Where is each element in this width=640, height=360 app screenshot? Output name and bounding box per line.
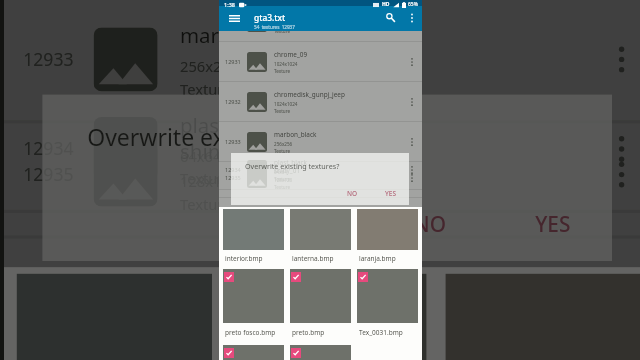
- staticText: 54 textures 12937: [254, 24, 295, 30]
- staticText: marbon_black: [274, 130, 317, 139]
- staticText: marbon_black: [180, 21, 318, 50]
- staticText: gta3.txt: [254, 12, 286, 23]
- button[interactable]: YES: [535, 210, 570, 239]
- staticText: chromedisk_gunpj_jeep: [274, 90, 345, 99]
- button[interactable]: 12932: [219, 82, 422, 121]
- button[interactable]: More options for shiny_01: [599, 152, 640, 197]
- button[interactable]: More options for shiny_01: [405, 171, 419, 185]
- button[interactable]: 12931: [219, 42, 422, 81]
- button[interactable]: 12930: [219, 31, 422, 41]
- button[interactable]: More options for marbon_black: [599, 37, 640, 82]
- staticText: 12934: [225, 166, 241, 173]
- staticText: Texture: [180, 79, 234, 98]
- staticText: plast_black: [180, 111, 289, 139]
- button[interactable]: preto fosco.bmp: [220, 269, 287, 342]
- staticText: 1:38: [224, 1, 235, 8]
- staticText: YES: [535, 210, 570, 239]
- staticText: YES: [385, 189, 396, 198]
- staticText: Overwrite existing textures?: [245, 161, 340, 171]
- staticText: 128x128: [274, 177, 293, 183]
- button[interactable]: Tex_0031.bmp: [354, 269, 421, 342]
- button[interactable]: lanterna.bmp: [287, 209, 354, 266]
- staticText: 12935: [23, 162, 74, 184]
- staticText: 256x256: [274, 141, 293, 147]
- staticText: 64x64: [180, 146, 222, 165]
- staticText: Texture: [274, 108, 291, 114]
- staticText: 12933: [225, 138, 241, 145]
- staticText: Texture: [180, 168, 234, 187]
- staticText: NO: [347, 189, 358, 198]
- button[interactable]: More options for plast_black: [405, 163, 419, 177]
- button[interactable]: More options: [405, 11, 419, 25]
- button[interactable]: 12934: [4, 85, 640, 210]
- button[interactable]: [220, 345, 287, 360]
- button[interactable]: Search: [381, 8, 399, 26]
- staticText: interior.bmp: [225, 254, 263, 263]
- button[interactable]: 12933: [219, 122, 422, 161]
- button[interactable]: More options for chrome_09: [405, 55, 419, 69]
- staticText: plast_black: [274, 158, 308, 167]
- staticText: Texture: [274, 184, 291, 190]
- staticText: 12935: [225, 174, 241, 181]
- button[interactable]: lanterna.bmp: [222, 274, 436, 360]
- button[interactable]: interior.bmp: [220, 209, 287, 266]
- button[interactable]: 12934: [219, 150, 422, 189]
- staticText: 12934: [23, 136, 74, 159]
- button[interactable]: YES: [385, 189, 396, 198]
- button[interactable]: interior.bmp: [7, 274, 222, 360]
- staticText: Texture: [180, 194, 234, 213]
- staticText: 1024x1024: [274, 61, 298, 67]
- button[interactable]: Open navigation drawer: [223, 11, 245, 25]
- staticText: Texture: [274, 176, 291, 182]
- staticText: 12931: [225, 58, 241, 65]
- staticText: HD: [382, 1, 390, 8]
- staticText: 12932: [225, 98, 241, 105]
- staticText: 12933: [23, 47, 74, 69]
- staticText: 128x128: [180, 171, 241, 191]
- staticText: shiny_01: [180, 136, 266, 165]
- staticText: lanterna.bmp: [292, 254, 334, 263]
- button[interactable]: NO: [414, 210, 449, 239]
- staticText: 256x256: [180, 56, 241, 75]
- button[interactable]: preto.bmp: [287, 269, 354, 342]
- staticText: 1024x1024: [274, 101, 298, 107]
- button[interactable]: More options for marbon_black: [405, 135, 419, 149]
- button[interactable]: laranja.bmp: [436, 274, 640, 360]
- button[interactable]: NO: [347, 189, 358, 198]
- button[interactable]: [287, 345, 354, 360]
- staticText: 64x64: [274, 169, 287, 175]
- button[interactable]: More options for chromedisk_gunpj_jeep: [405, 95, 419, 109]
- staticText: preto fosco.bmp: [225, 328, 276, 337]
- staticText: Overwrite existing textures?: [87, 120, 391, 152]
- staticText: shiny_01: [274, 166, 301, 175]
- button[interactable]: 12933: [4, 0, 640, 120]
- staticText: laranja.bmp: [359, 254, 396, 263]
- button[interactable]: More options for plast_black: [599, 127, 640, 171]
- staticText: NO: [414, 210, 449, 239]
- staticText: Texture: [274, 148, 291, 154]
- staticText: preto.bmp: [292, 328, 325, 337]
- staticText: 65%: [408, 1, 418, 8]
- staticText: Texture: [274, 68, 291, 74]
- button[interactable]: 12935: [219, 158, 422, 197]
- button[interactable]: 12935: [4, 111, 640, 235]
- staticText: chrome_09: [274, 50, 308, 59]
- staticText: Tex_0031.bmp: [359, 328, 403, 337]
- staticText: Texture: [274, 31, 291, 34]
- button[interactable]: laranja.bmp: [354, 209, 421, 266]
